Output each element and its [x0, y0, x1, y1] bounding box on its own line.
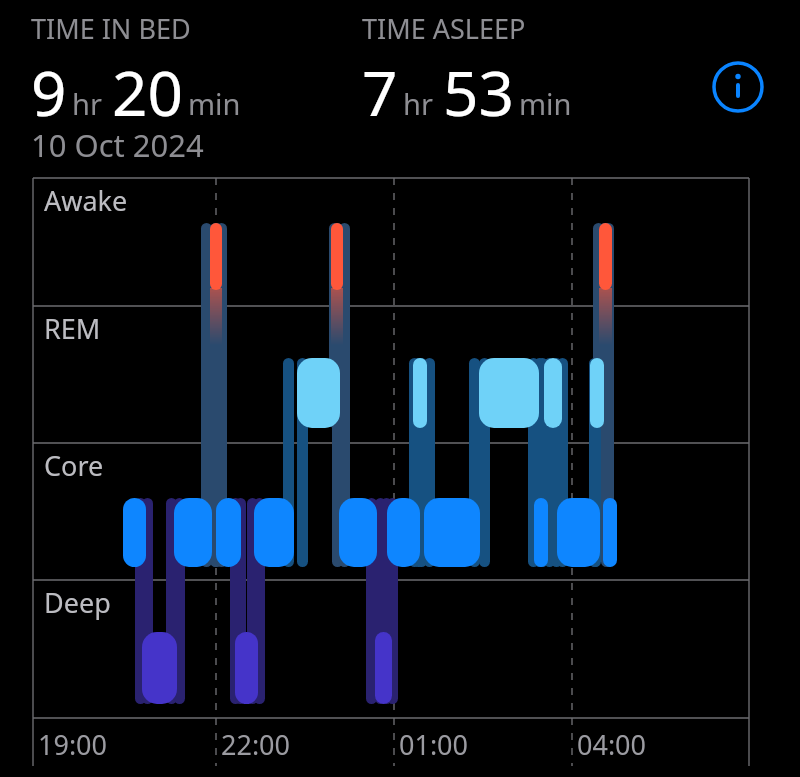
button[interactable]: About sleep stages — [710, 59, 766, 115]
